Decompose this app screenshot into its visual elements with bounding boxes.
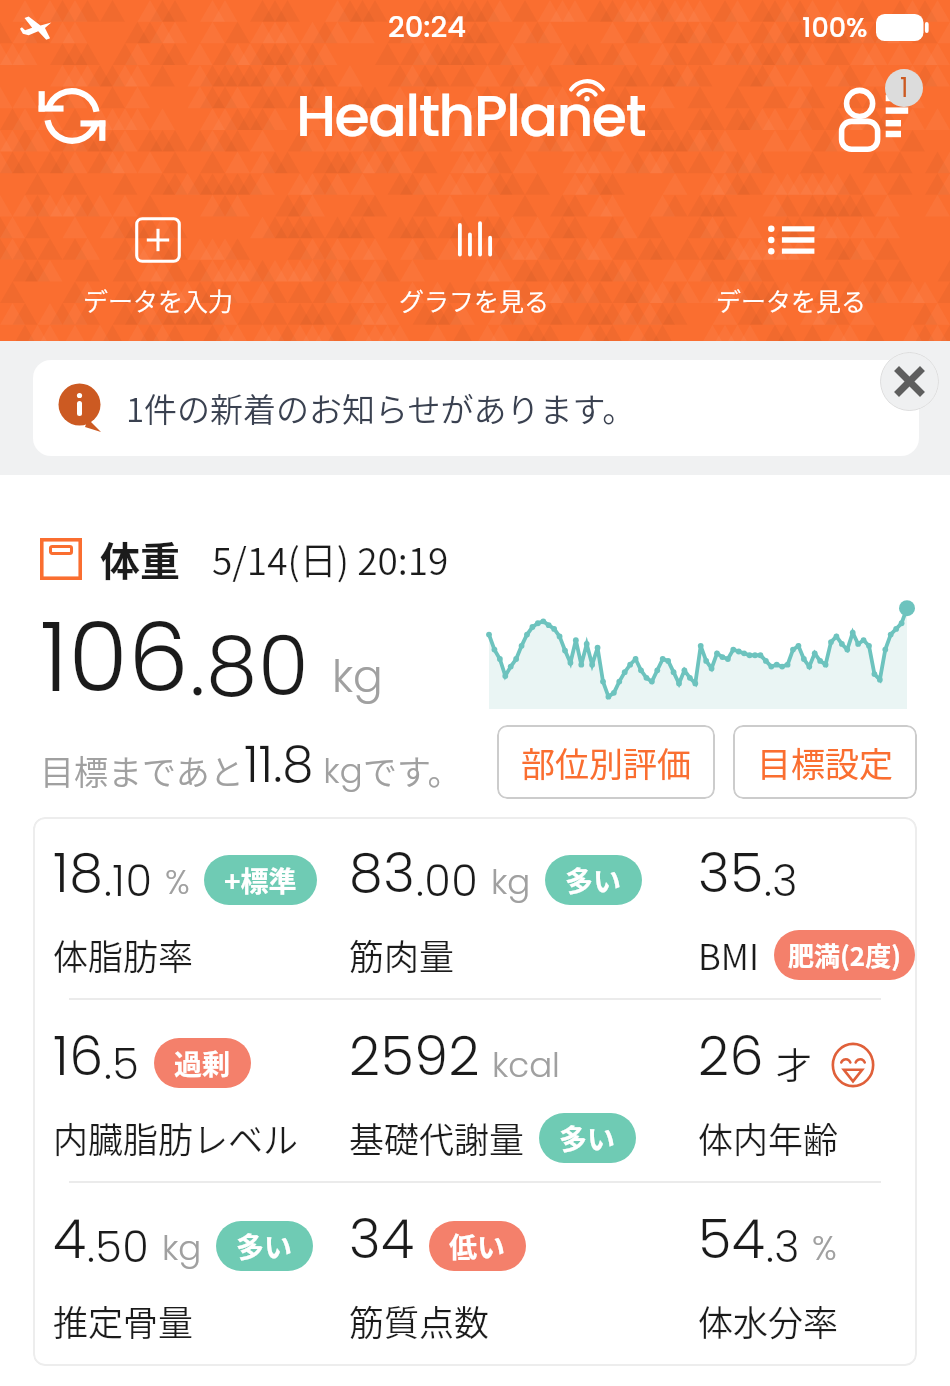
staticText: .3 xyxy=(766,1217,800,1277)
staticText: 5/14(日) 20:19 xyxy=(212,532,449,586)
staticText: 20:24 xyxy=(388,7,466,48)
staticText: 体脂肪率 xyxy=(53,929,194,980)
staticText: 26 xyxy=(698,1018,764,1094)
staticText: グラフを見る xyxy=(399,282,550,318)
staticText: データを入力 xyxy=(83,282,234,318)
staticText: 筋質点数 xyxy=(349,1295,490,1346)
staticText: 目標まであと xyxy=(40,746,244,795)
staticText: 推定骨量 xyxy=(53,1295,194,1346)
staticText: % xyxy=(165,858,190,906)
staticText: 多い xyxy=(559,1118,616,1159)
staticText: 1 xyxy=(900,70,909,106)
button[interactable]: データを入力 xyxy=(0,198,316,338)
staticText: +標準 xyxy=(224,860,297,901)
staticText: 体内年齢 xyxy=(698,1112,839,1163)
staticText: データを見る xyxy=(716,282,867,318)
staticText: 体水分率 xyxy=(698,1295,839,1346)
staticText: 内臓脂肪レベル xyxy=(53,1112,299,1163)
button[interactable]: Sync xyxy=(26,70,118,162)
staticText: .10 xyxy=(104,851,153,911)
staticText: 体重 xyxy=(100,530,180,588)
staticText: .00 xyxy=(416,851,479,911)
staticText: 筋肉量 xyxy=(349,929,455,980)
staticText: 部位別評価 xyxy=(521,738,691,787)
staticText: .5 xyxy=(104,1034,140,1094)
staticText: 100% xyxy=(802,9,868,47)
staticText: kg xyxy=(314,747,363,795)
button[interactable]: 目標設定 xyxy=(733,725,917,799)
staticText: 低い xyxy=(449,1226,506,1267)
staticText: 目標設定 xyxy=(757,738,893,787)
staticText: 4 xyxy=(53,1201,87,1277)
button[interactable]: 1件の新着のお知らせがあります。 xyxy=(33,360,919,456)
button[interactable]: データを見る xyxy=(633,198,950,338)
staticText: 35 xyxy=(698,835,764,911)
staticText: 54 xyxy=(698,1201,766,1277)
staticText: kg xyxy=(332,646,383,708)
staticText: 11.8 xyxy=(244,730,314,800)
staticText: HealthPlanet xyxy=(296,76,646,156)
staticText: 才 xyxy=(776,1037,813,1089)
staticText: kg xyxy=(162,1224,202,1272)
staticText: 基礎代謝量 xyxy=(349,1112,525,1163)
staticText: 106 xyxy=(40,590,190,724)
staticText: 多い xyxy=(236,1226,293,1267)
button[interactable]: Close notification xyxy=(880,352,939,411)
staticText: 2592 xyxy=(349,1018,480,1094)
button[interactable]: 部位別評価 xyxy=(497,725,715,799)
staticText: 肥満(2度) xyxy=(788,936,901,974)
staticText: .80 xyxy=(190,609,310,724)
staticText: 過剰 xyxy=(174,1043,231,1084)
button[interactable]: グラフを見る xyxy=(316,198,633,338)
staticText: BMI xyxy=(698,929,760,980)
staticText: 多い xyxy=(565,860,622,901)
staticText: 83 xyxy=(349,835,416,911)
staticText: .50 xyxy=(87,1217,150,1277)
staticText: % xyxy=(812,1224,837,1272)
staticText: 34 xyxy=(349,1201,415,1277)
button[interactable]: Profile xyxy=(824,66,924,166)
staticText: kg xyxy=(491,858,531,906)
staticText: 1件の新着のお知らせがあります。 xyxy=(126,384,636,432)
staticText: 18 xyxy=(53,835,104,911)
staticText: 16 xyxy=(53,1018,104,1094)
staticText: .3 xyxy=(764,851,798,911)
staticText: kcal xyxy=(492,1041,560,1089)
staticText: です。 xyxy=(363,746,462,795)
